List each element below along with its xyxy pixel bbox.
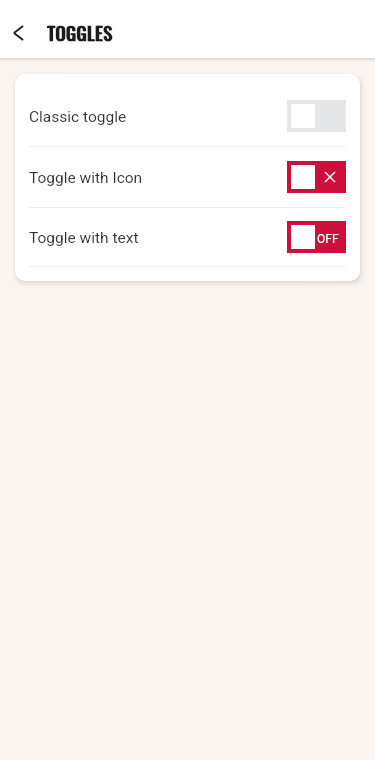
button[interactable]: Classic toggle [15,86,360,146]
button[interactable]: Toggle with Icon [15,147,360,207]
staticText: TOGGLES [47,20,113,47]
staticText: OFF [317,232,339,246]
button[interactable]: Toggle with Icon, off [287,161,346,193]
button[interactable]: Back [0,9,46,58]
button[interactable]: Classic toggle, off [287,100,346,132]
staticText: TOGGLES [48,20,114,47]
button[interactable]: Toggle with text, off [287,221,346,253]
button[interactable]: Toggle with text [15,208,360,266]
staticText: Classic toggle [29,108,127,126]
staticText: Toggle with Icon [29,169,143,187]
staticText: Toggle with text [29,229,139,247]
